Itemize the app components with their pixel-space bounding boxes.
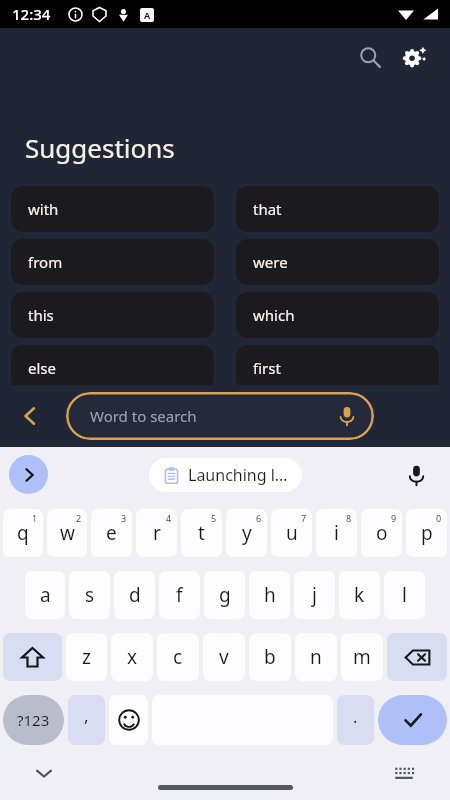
button[interactable]: Emoji <box>109 695 148 745</box>
button[interactable]: f <box>159 571 200 619</box>
button[interactable]: . <box>337 695 374 745</box>
button[interactable]: o <box>361 509 402 557</box>
button[interactable]: with <box>11 186 214 232</box>
staticText: y <box>242 520 252 546</box>
button[interactable]: were <box>236 239 439 285</box>
button[interactable]: d <box>114 571 155 619</box>
button[interactable]: first <box>236 345 439 391</box>
button[interactable]: Search <box>348 35 392 79</box>
staticText: with <box>28 199 59 219</box>
staticText: 2 <box>76 512 82 524</box>
staticText: l <box>402 582 407 608</box>
button[interactable]: Shift <box>3 633 62 681</box>
staticText: d <box>129 582 141 608</box>
button[interactable]: j <box>294 571 335 619</box>
button[interactable]: v <box>203 633 245 681</box>
staticText: s <box>85 582 95 608</box>
button[interactable]: Voice input <box>396 455 436 495</box>
button[interactable]: z <box>66 633 107 681</box>
staticText: 4 <box>166 512 172 524</box>
staticText: u <box>286 520 298 546</box>
button[interactable]: Launching l… <box>149 458 302 492</box>
button[interactable]: y <box>226 509 267 557</box>
button[interactable]: Enter <box>378 695 447 745</box>
button[interactable]: w <box>47 509 87 557</box>
staticText: 7 <box>301 512 307 524</box>
button[interactable]: Hide keyboard <box>24 753 64 793</box>
button[interactable]: h <box>249 571 290 619</box>
button[interactable]: n <box>295 633 337 681</box>
staticText: Suggestions <box>25 130 175 165</box>
button[interactable]: Word to search <box>66 392 374 440</box>
staticText: 9 <box>391 512 397 524</box>
button[interactable]: g <box>204 571 245 619</box>
staticText: 8 <box>346 512 352 524</box>
staticText: r <box>153 520 161 546</box>
button[interactable]: x <box>111 633 153 681</box>
button[interactable]: b <box>249 633 291 681</box>
staticText: i <box>334 520 339 546</box>
button[interactable]: that <box>236 186 439 232</box>
button[interactable]: e <box>91 509 132 557</box>
staticText: f <box>176 582 183 608</box>
button[interactable]: i <box>316 509 357 557</box>
staticText: k <box>354 582 365 608</box>
staticText: q <box>17 520 29 546</box>
button[interactable]: Back <box>8 394 52 438</box>
staticText: b <box>264 644 276 670</box>
staticText: 6 <box>256 512 262 524</box>
button[interactable]: a <box>25 571 65 619</box>
button[interactable]: which <box>236 292 439 338</box>
staticText: which <box>253 305 295 325</box>
staticText: w <box>60 520 75 546</box>
staticText: first <box>253 358 281 378</box>
button[interactable]: Change keyboard <box>384 753 424 793</box>
button[interactable]: q <box>3 509 43 557</box>
button[interactable]: Backspace <box>387 633 447 681</box>
button[interactable]: s <box>69 571 110 619</box>
staticText: 0 <box>436 512 442 524</box>
staticText: v <box>219 644 229 670</box>
staticText: n <box>310 644 322 670</box>
staticText: Launching l… <box>188 464 288 486</box>
button[interactable]: c <box>157 633 199 681</box>
button[interactable]: r <box>136 509 177 557</box>
staticText: j <box>312 582 317 608</box>
staticText: h <box>264 582 276 608</box>
staticText: a <box>40 582 51 608</box>
staticText: g <box>219 582 231 608</box>
button[interactable]: m <box>341 633 383 681</box>
button[interactable]: this <box>11 292 214 338</box>
staticText: Word to search <box>90 406 197 426</box>
button[interactable]: ?123 <box>3 695 64 745</box>
button[interactable]: k <box>339 571 380 619</box>
staticText: 3 <box>121 512 127 524</box>
staticText: . <box>353 705 358 728</box>
staticText: were <box>253 252 288 272</box>
staticText: c <box>173 644 183 670</box>
staticText: from <box>28 252 63 272</box>
staticText: e <box>106 520 117 546</box>
staticText: 12:34 <box>12 4 51 24</box>
staticText: else <box>28 358 56 378</box>
button[interactable]: from <box>11 239 214 285</box>
staticText: ?123 <box>17 710 50 730</box>
button[interactable]: Settings <box>392 35 436 79</box>
button[interactable]: l <box>384 571 425 619</box>
button[interactable]: p <box>406 509 447 557</box>
button[interactable]: Expand suggestions <box>9 455 48 494</box>
staticText: m <box>353 644 371 670</box>
staticText: 5 <box>211 512 217 524</box>
staticText: t <box>198 520 205 546</box>
staticText: that <box>253 199 282 219</box>
button[interactable]: u <box>271 509 312 557</box>
button[interactable]: t <box>181 509 222 557</box>
staticText: o <box>376 520 388 546</box>
button[interactable]: , <box>68 695 105 745</box>
staticText: x <box>127 644 138 670</box>
button[interactable]: Voice search <box>330 399 364 433</box>
button[interactable]: else <box>11 345 214 391</box>
staticText: 1 <box>32 512 38 524</box>
staticText: z <box>82 644 91 670</box>
